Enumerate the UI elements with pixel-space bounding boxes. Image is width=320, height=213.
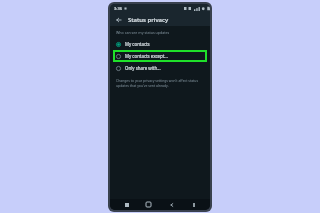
button[interactable]: Keyboard xyxy=(188,199,199,210)
staticText: Status privacy xyxy=(128,16,169,24)
staticText: My contacts except... xyxy=(125,53,168,59)
button[interactable]: Home xyxy=(143,199,154,210)
button[interactable]: My contacts xyxy=(113,38,207,50)
staticText: My contacts xyxy=(125,41,150,47)
staticText: Changes to your privacy settings won't a… xyxy=(116,78,204,88)
button[interactable]: Back xyxy=(114,15,123,24)
staticText: Only share with... xyxy=(125,65,161,71)
button[interactable]: Only share with... xyxy=(113,62,207,74)
button[interactable]: Back xyxy=(166,199,177,210)
button[interactable]: Recents xyxy=(121,199,132,210)
staticText: 3:36 xyxy=(114,6,122,11)
button[interactable]: My contacts except... xyxy=(113,50,207,62)
staticText: Who can see my status updates xyxy=(116,30,170,35)
